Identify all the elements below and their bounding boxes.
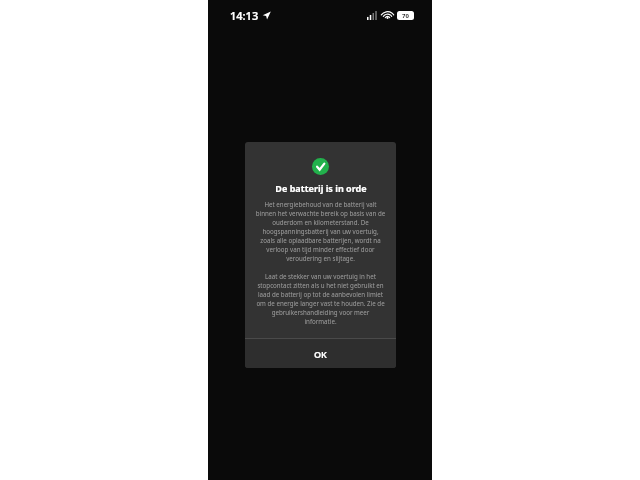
staticText: 14:13 — [230, 8, 259, 23]
staticText: 70 — [402, 12, 409, 20]
button[interactable]: OK — [245, 339, 396, 368]
staticText: De batterij is in orde — [275, 182, 367, 194]
staticText: Het energiebehoud van de batterij valt b… — [255, 200, 386, 263]
staticText: Laat de stekker van uw voertuig in het s… — [255, 272, 386, 326]
staticText: OK — [314, 348, 327, 360]
